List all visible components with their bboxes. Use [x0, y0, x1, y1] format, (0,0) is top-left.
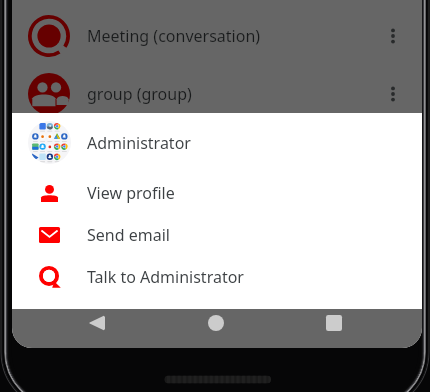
button[interactable]: View profile: [12, 172, 422, 214]
button[interactable]: Administrator: [12, 113, 422, 172]
button[interactable]: group (group): [12, 64, 422, 123]
staticText: Send email: [87, 224, 170, 246]
button[interactable]: Recent apps: [314, 303, 354, 342]
button[interactable]: More options: [373, 16, 413, 56]
staticText: Talk to Administrator: [87, 266, 244, 288]
button[interactable]: Home: [196, 303, 236, 342]
staticText: View profile: [87, 182, 175, 204]
button[interactable]: Back: [77, 303, 117, 342]
button[interactable]: Talk to Administrator: [12, 256, 422, 298]
staticText: Administrator: [87, 132, 191, 154]
button[interactable]: Send email: [12, 214, 422, 256]
button[interactable]: Meeting (conversation): [12, 6, 422, 65]
button[interactable]: More options: [373, 74, 413, 114]
staticText: Meeting (conversation): [87, 25, 261, 47]
staticText: group (group): [87, 83, 192, 105]
